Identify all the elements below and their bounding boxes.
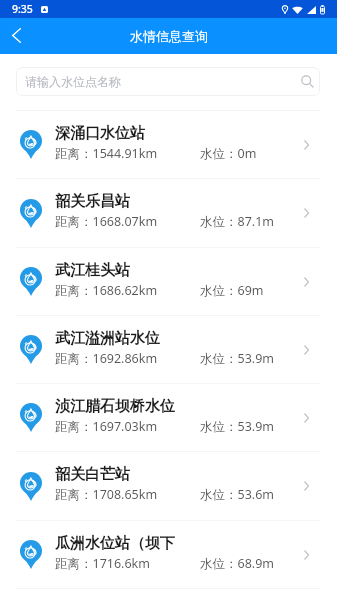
button[interactable]: 武江溢洲站水位 [0,316,337,383]
staticText: 韶关白芒站 [55,465,130,484]
staticText: 距离：1544.91km [55,145,158,162]
button[interactable]: 请输入水位点名称 [16,67,320,96]
staticText: 9:35 [12,2,33,16]
staticText: 武江桂头站 [55,261,130,280]
staticText: 距离：1686.62km [55,282,158,299]
staticText: 水情信息查询 [130,28,208,44]
button[interactable]: Back [0,18,33,54]
staticText: 瓜洲水位站（坝下 [55,534,175,553]
button[interactable]: 浈江腊石坝桥水位 [0,384,337,451]
staticText: 距离：1668.07km [55,213,158,230]
staticText: 水位：87.1m [200,213,274,230]
staticText: 水位：53.6m [200,486,274,503]
staticText: 浈江腊石坝桥水位 [55,397,175,416]
staticText: 水位：69m [200,282,264,299]
staticText: 距离：1697.03km [55,418,158,435]
staticText: 距离：1692.86km [55,350,158,367]
staticText: 距离：1708.65km [55,486,158,503]
staticText: 水位：68.9m [200,555,274,572]
button[interactable]: 韶关白芒站 [0,452,337,520]
staticText: 深涌口水位站 [55,124,145,143]
staticText: 水位：53.9m [200,350,274,367]
button[interactable]: 武江桂头站 [0,248,337,315]
staticText: 水位：0m [200,145,257,162]
staticText: 距离：1716.6km [55,555,150,572]
button[interactable]: 瓜洲水位站（坝下 [0,521,337,588]
button[interactable]: 韶关乐昌站 [0,179,337,247]
staticText: 水位：53.9m [200,418,274,435]
staticText: 武江溢洲站水位 [55,329,160,348]
button[interactable]: 深涌口水位站 [0,111,337,178]
staticText: 请输入水位点名称 [25,74,121,89]
staticText: 韶关乐昌站 [55,192,130,211]
